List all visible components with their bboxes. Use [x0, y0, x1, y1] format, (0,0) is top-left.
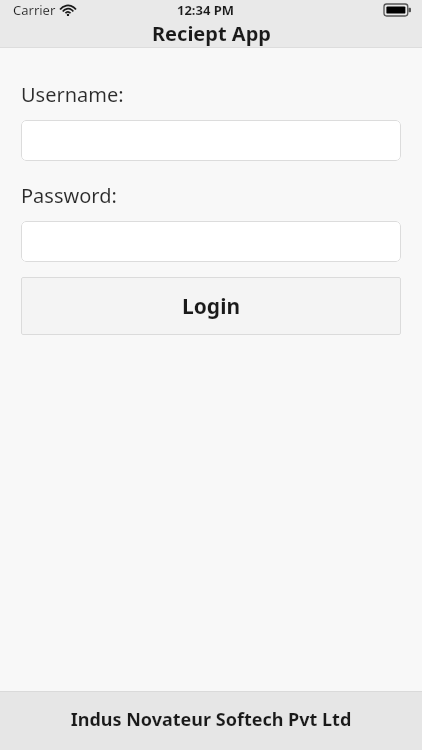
button[interactable]: Text input field — [21, 120, 401, 161]
button[interactable]: Text input field — [21, 221, 401, 262]
staticText: 12:34 PM — [177, 1, 235, 19]
staticText: Login — [182, 292, 241, 321]
staticText: Password: — [21, 182, 117, 209]
staticText: Username: — [21, 81, 124, 108]
staticText: Reciept App — [152, 20, 271, 47]
staticText: Carrier — [13, 1, 56, 19]
button[interactable]: Login — [21, 277, 401, 335]
staticText: Indus Novateur Softech Pvt Ltd — [0, 707, 422, 732]
